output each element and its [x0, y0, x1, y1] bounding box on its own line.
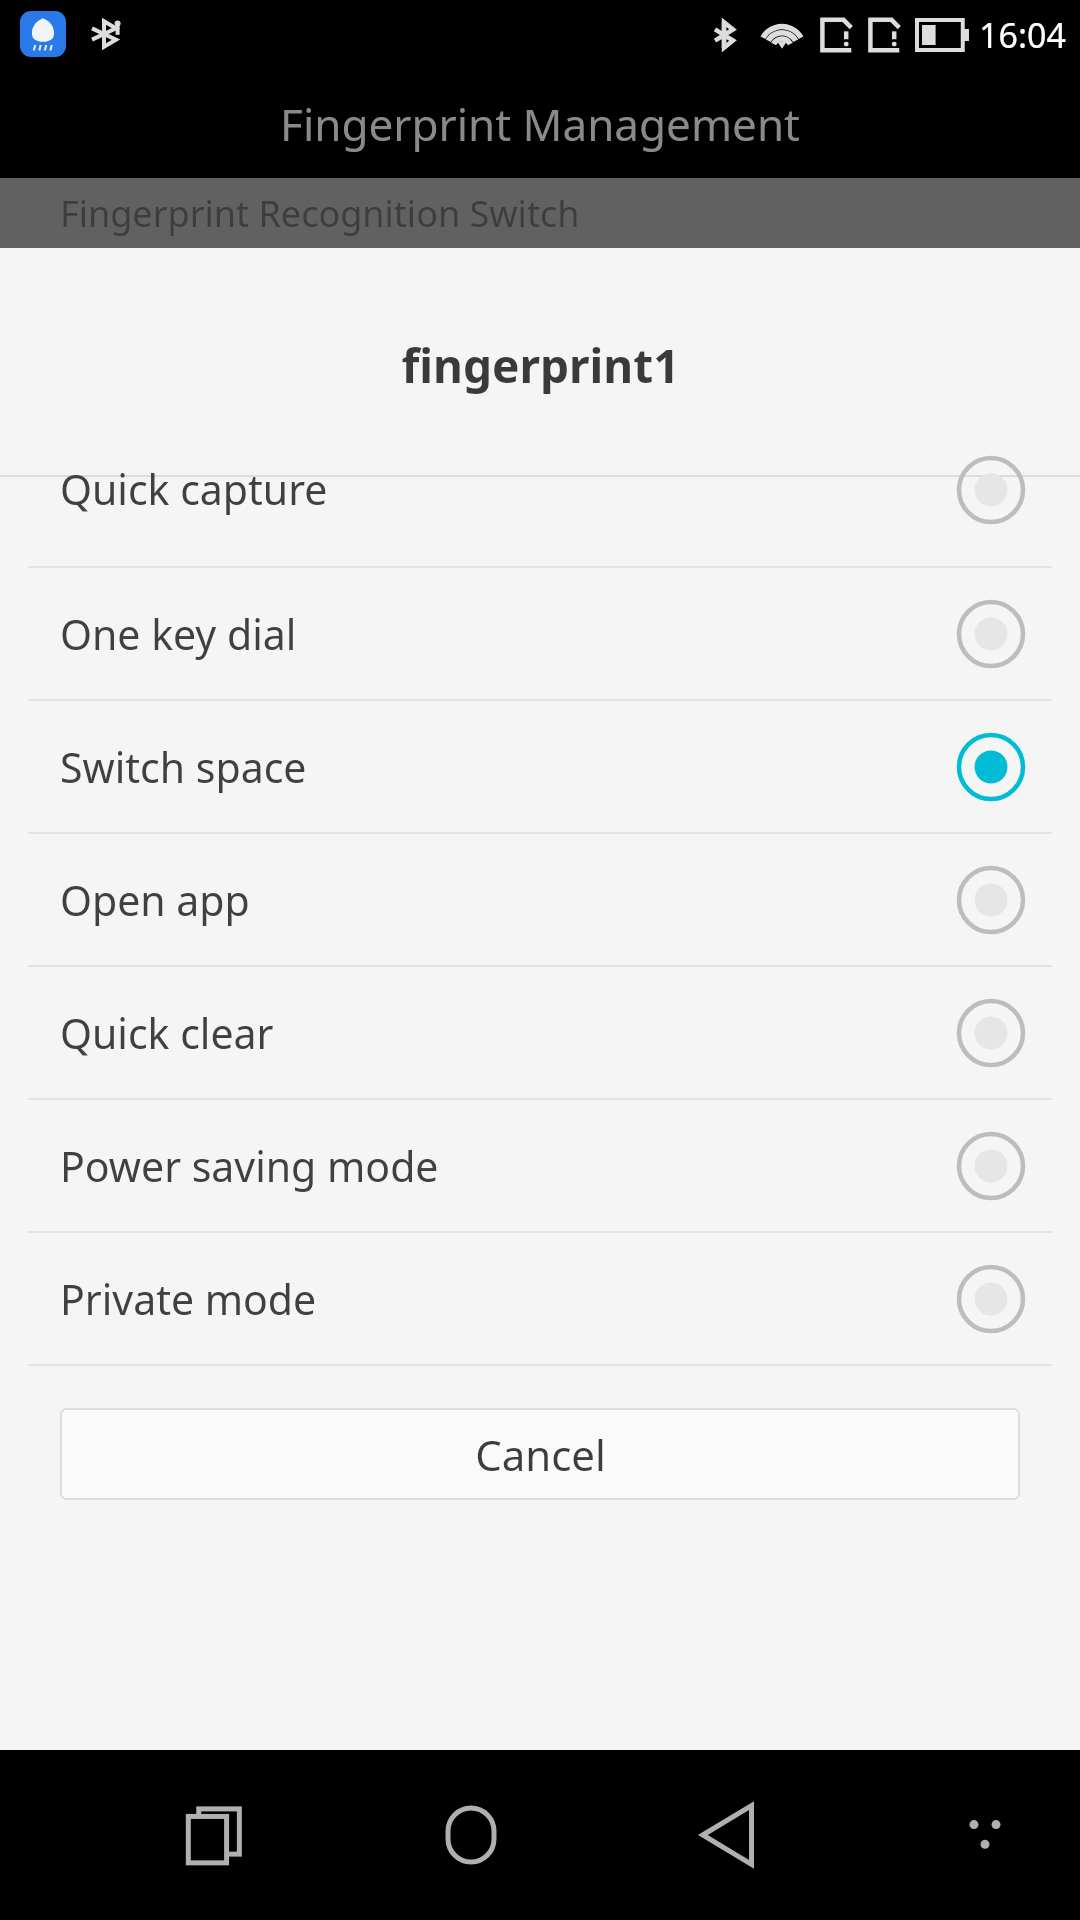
- button[interactable]: Fingerprint Recognition Switch: [0, 178, 1080, 248]
- staticText: Quick clear: [60, 1005, 274, 1061]
- staticText: Fingerprint Recognition Switch: [60, 189, 580, 238]
- staticText: Open app: [60, 872, 250, 928]
- staticText: Private mode: [60, 1271, 317, 1327]
- staticText: One key dial: [60, 606, 297, 662]
- button[interactable]: Home: [406, 1770, 536, 1900]
- staticText: Switch space: [60, 739, 307, 795]
- button[interactable]: Cancel: [60, 1408, 1020, 1500]
- button[interactable]: Quick clear: [0, 967, 1080, 1098]
- staticText: Cancel: [475, 1426, 606, 1483]
- button[interactable]: Switch space: [0, 701, 1080, 832]
- button[interactable]: Quick capture: [0, 477, 1080, 566]
- staticText: Power saving mode: [60, 1138, 439, 1194]
- button[interactable]: Menu: [920, 1770, 1050, 1900]
- button[interactable]: Private mode: [0, 1233, 1080, 1364]
- button[interactable]: Power saving mode: [0, 1100, 1080, 1231]
- button[interactable]: Recent apps: [150, 1770, 280, 1900]
- button[interactable]: Back: [663, 1770, 793, 1900]
- staticText: 16:04: [979, 12, 1066, 58]
- staticText: Fingerprint Management: [280, 94, 800, 154]
- staticText: fingerprint1: [401, 334, 680, 397]
- button[interactable]: One key dial: [0, 568, 1080, 699]
- button[interactable]: Open app: [0, 834, 1080, 965]
- staticText: Quick capture: [60, 461, 328, 517]
